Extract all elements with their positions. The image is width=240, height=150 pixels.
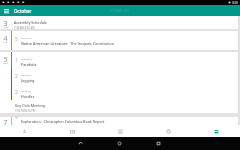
staticText: 3:30 [232, 1, 238, 5]
staticText: Exploration: Christopher Columbus Book R… [21, 119, 105, 124]
staticText: Parabola [21, 62, 37, 67]
staticText: Key Club Meeting [15, 103, 46, 108]
button[interactable]: Students [0, 125, 48, 137]
button[interactable]: Classes [48, 125, 96, 137]
staticText: 3 [3, 19, 8, 26]
staticText: 7 [3, 118, 8, 125]
staticText: 7:00 PM-8:30 PM [15, 109, 36, 113]
staticText: 4 [3, 34, 8, 41]
staticText: TUE [3, 41, 8, 44]
button[interactable]: 4 [0, 31, 238, 50]
staticText: English 3 [21, 36, 32, 39]
staticText: Athletics [21, 89, 32, 92]
button[interactable]: Recents [139, 137, 178, 150]
staticText: 5 [3, 55, 8, 62]
button[interactable]: Back [61, 137, 100, 150]
button[interactable]: 7 [0, 117, 238, 125]
staticText: 1 [15, 57, 18, 64]
button[interactable]: Assignments [96, 125, 144, 137]
staticText: Hurdles [21, 94, 35, 99]
button[interactable]: Home [100, 137, 139, 150]
button[interactable]: Menu [3, 7, 10, 14]
staticText: Athletics [21, 73, 32, 76]
staticText: October [14, 8, 32, 14]
staticText: MON [3, 26, 9, 29]
staticText: 2 [15, 89, 18, 96]
staticText: Algebra 2 [21, 57, 33, 60]
staticText: 7:30 AM-8:00 AM [14, 26, 35, 29]
button[interactable]: Grades [144, 125, 192, 137]
button[interactable]: 3 [0, 16, 238, 29]
staticText: OCTOBER 2016 [110, 9, 130, 13]
button[interactable]: 5 [0, 52, 238, 113]
staticText: Assembly Schedule [14, 20, 47, 25]
button[interactable]: Calendar [192, 125, 240, 137]
staticText: Jogging [21, 78, 35, 83]
staticText: WED [3, 62, 8, 65]
staticText: Native American Literature: The Iroquois… [21, 41, 114, 46]
staticText: 2 [15, 73, 18, 80]
staticText: 5 [15, 36, 18, 43]
staticText: 4 [15, 117, 18, 121]
